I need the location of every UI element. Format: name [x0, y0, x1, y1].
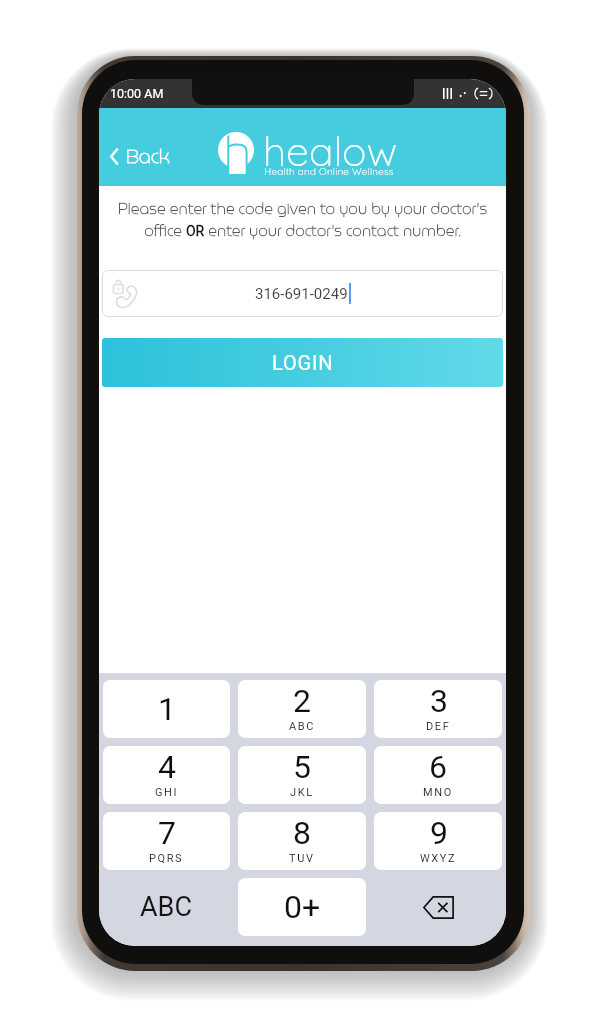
- button[interactable]: 4: [103, 746, 230, 804]
- staticText: 5: [293, 748, 311, 786]
- button[interactable]: 7: [103, 812, 230, 870]
- staticText: 7: [158, 814, 176, 852]
- staticText: healow: [263, 125, 398, 176]
- staticText: Back: [126, 142, 171, 171]
- button[interactable]: 1: [103, 680, 230, 738]
- button[interactable]: 0+: [238, 878, 366, 936]
- staticText: Please enter the code given to you by yo…: [104, 197, 501, 243]
- button[interactable]: 3: [374, 680, 502, 738]
- staticText: TUV: [289, 852, 315, 865]
- button[interactable]: Phone number input: [102, 270, 503, 317]
- staticText: 316-691-0249: [255, 285, 348, 303]
- button[interactable]: ABC: [103, 878, 230, 936]
- staticText: 1: [158, 690, 176, 728]
- staticText: PQRS: [149, 852, 184, 865]
- button[interactable]: LOGIN: [102, 338, 503, 387]
- staticText: GHI: [155, 786, 179, 799]
- staticText: MNO: [423, 786, 453, 799]
- staticText: JKL: [290, 786, 314, 799]
- button[interactable]: Backspace: [374, 878, 502, 936]
- button[interactable]: 8: [238, 812, 366, 870]
- staticText: 3: [430, 682, 448, 720]
- button[interactable]: 5: [238, 746, 366, 804]
- button[interactable]: Back: [110, 142, 171, 171]
- staticText: ABC: [289, 720, 315, 733]
- staticText: Health and Online Wellness: [264, 165, 394, 178]
- staticText: 4: [158, 748, 176, 786]
- staticText: 2: [293, 682, 311, 720]
- staticText: 6: [429, 748, 447, 786]
- button[interactable]: 2: [238, 680, 366, 738]
- button[interactable]: 6: [374, 746, 502, 804]
- staticText: 9: [430, 814, 448, 852]
- staticText: 8: [293, 814, 311, 852]
- staticText: LOGIN: [272, 351, 334, 374]
- staticText: 0+: [284, 888, 321, 926]
- staticText: WXYZ: [420, 852, 457, 865]
- staticText: DEF: [426, 720, 451, 733]
- staticText: 10:00 AM: [110, 86, 164, 101]
- button[interactable]: 9: [374, 812, 502, 870]
- staticText: ABC: [140, 891, 193, 923]
